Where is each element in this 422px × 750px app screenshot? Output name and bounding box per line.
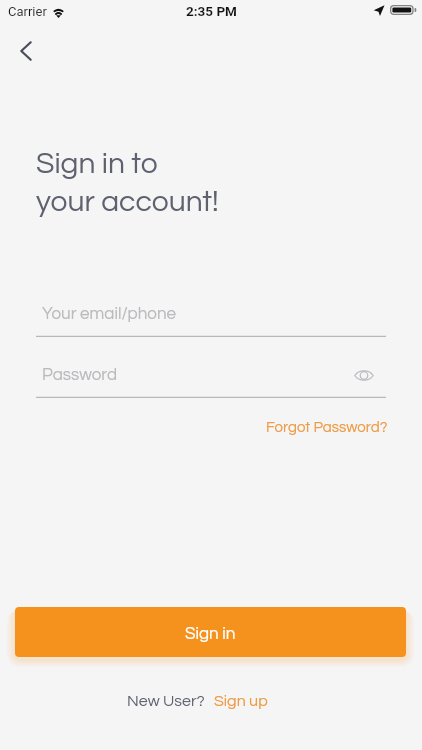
staticText: New User? (127, 693, 205, 709)
staticText: Carrier (8, 4, 47, 19)
button[interactable]: Your email/phone (36, 294, 386, 334)
button[interactable]: Back (6, 31, 46, 71)
staticText: your account! (36, 186, 219, 217)
staticText: Sign in to (36, 148, 158, 179)
staticText: Password (42, 366, 118, 384)
button[interactable]: Show password (350, 361, 378, 389)
staticText: 2:35 PM (186, 3, 237, 19)
button[interactable]: Sign in (15, 607, 406, 657)
button[interactable]: Password (36, 355, 386, 395)
staticText: Sign in (185, 625, 236, 643)
button[interactable]: Forgot Password? (266, 420, 388, 435)
button[interactable]: Sign up (214, 693, 268, 709)
staticText: Your email/phone (42, 305, 176, 323)
